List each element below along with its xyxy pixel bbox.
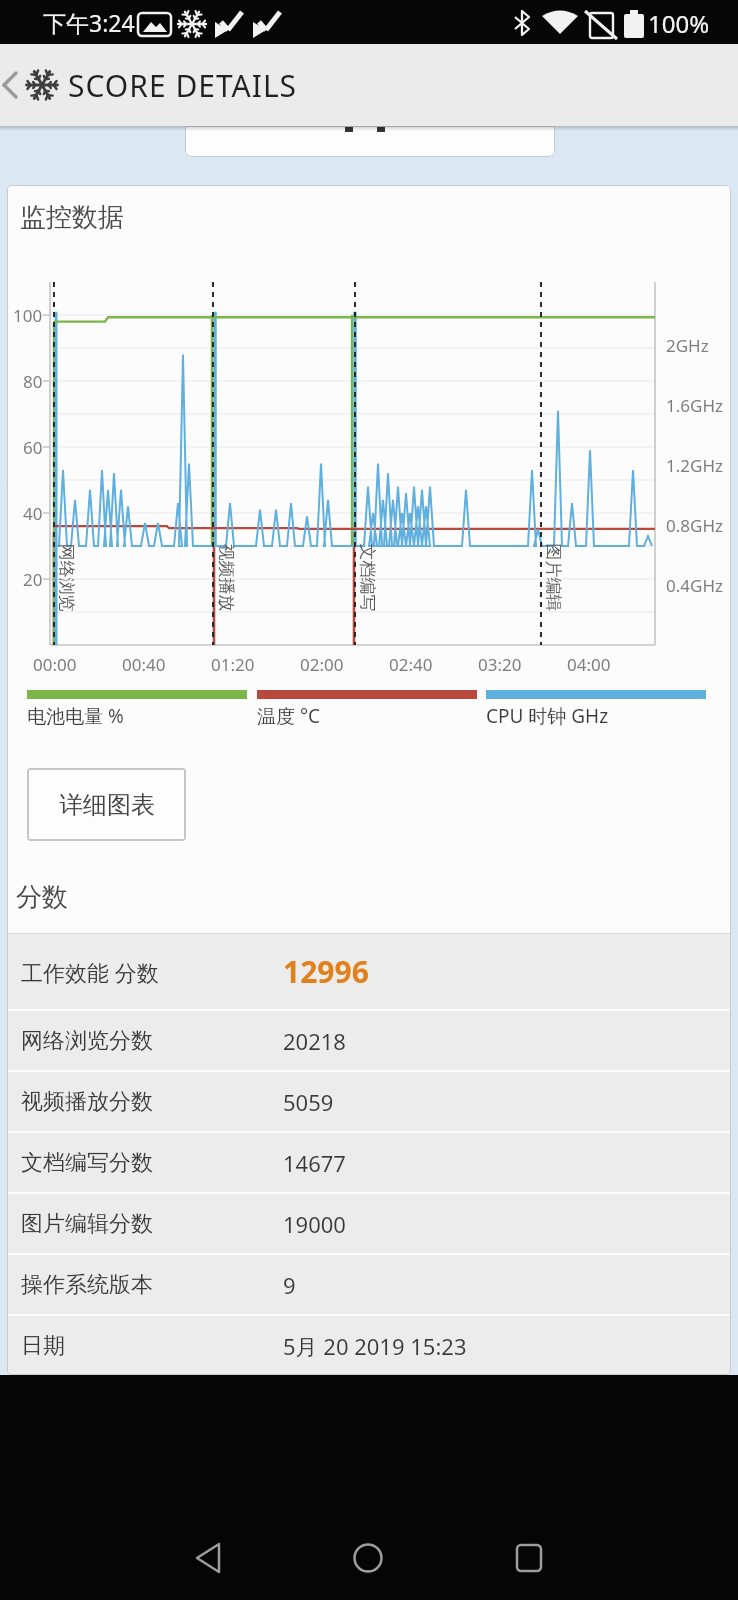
- staticText: 0.8GHz: [666, 514, 723, 537]
- staticText: 分数: [16, 881, 68, 914]
- staticText: 01:20: [211, 653, 255, 676]
- staticText: 19000: [283, 1209, 346, 1239]
- staticText: 1.6GHz: [666, 394, 723, 417]
- staticText: 02:40: [389, 653, 433, 676]
- staticText: 工作效能 分数: [21, 957, 159, 987]
- button[interactable]: [338, 1532, 398, 1584]
- staticText: 00:40: [122, 653, 166, 676]
- staticText: 网络浏览: [55, 543, 76, 611]
- staticText: 12996: [283, 951, 369, 992]
- staticText: 00:00: [33, 653, 77, 676]
- button[interactable]: 网络浏览分数: [7, 1011, 731, 1070]
- staticText: 日期: [21, 1332, 65, 1360]
- staticText: 操作系统版本: [21, 1271, 153, 1299]
- staticText: 04:00: [567, 653, 611, 676]
- staticText: 0.4GHz: [666, 574, 723, 597]
- staticText: 20: [23, 568, 43, 590]
- staticText: 100%: [648, 7, 710, 40]
- staticText: CPU 时钟 GHz: [486, 703, 609, 729]
- staticText: 9: [283, 1270, 296, 1300]
- button[interactable]: [499, 1532, 559, 1584]
- button[interactable]: 视频播放分数: [7, 1072, 731, 1131]
- staticText: 03:20: [478, 653, 522, 676]
- button[interactable]: 图片编辑分数: [7, 1194, 731, 1253]
- staticText: 80: [23, 370, 43, 392]
- button[interactable]: 日期: [7, 1316, 731, 1375]
- staticText: 下午3:24: [43, 7, 135, 38]
- button[interactable]: [185, 1532, 245, 1584]
- button[interactable]: 文档编写分数: [7, 1133, 731, 1192]
- staticText: 14677: [283, 1148, 346, 1178]
- staticText: 温度 °C: [257, 703, 321, 729]
- button[interactable]: SCORE DETAILS: [0, 44, 738, 126]
- staticText: 视频播放分数: [21, 1088, 153, 1116]
- button[interactable]: 详细图表: [27, 768, 186, 841]
- staticText: 图片编辑分数: [21, 1210, 153, 1238]
- staticText: 100: [13, 304, 43, 326]
- staticText: 5月 20 2019 15:23: [283, 1331, 467, 1361]
- staticText: 02:00: [300, 653, 344, 676]
- staticText: 电池电量 %: [27, 703, 124, 729]
- staticText: 5059: [283, 1087, 334, 1117]
- staticText: 文档编写分数: [21, 1149, 153, 1177]
- staticText: 2GHz: [666, 334, 709, 357]
- staticText: 网络浏览分数: [21, 1027, 153, 1055]
- staticText: 20218: [283, 1026, 346, 1056]
- staticText: 视频播放: [215, 543, 236, 611]
- staticText: SCORE DETAILS: [68, 65, 298, 106]
- staticText: 60: [23, 436, 43, 458]
- staticText: 40: [23, 502, 43, 524]
- staticText: 详细图表: [59, 790, 155, 820]
- staticText: 图片编辑: [542, 543, 563, 611]
- staticText: 监控数据: [20, 201, 124, 234]
- staticText: 1.2GHz: [666, 454, 723, 477]
- button[interactable]: 工作效能 分数: [7, 934, 731, 1009]
- staticText: 文档编写: [356, 543, 377, 611]
- button[interactable]: 操作系统版本: [7, 1255, 731, 1314]
